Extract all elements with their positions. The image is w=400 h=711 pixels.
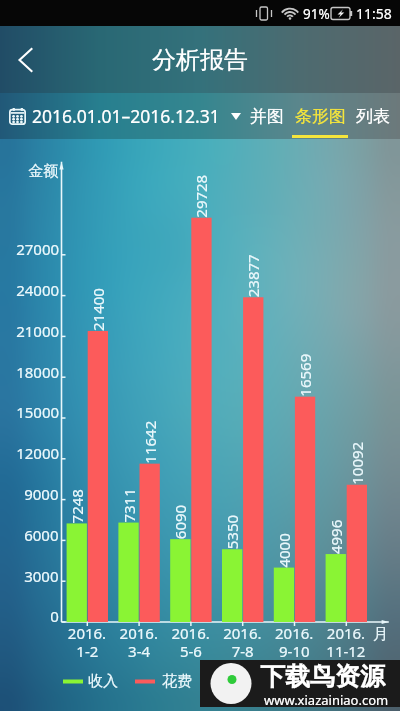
button[interactable]: 列表 bbox=[351, 93, 395, 139]
button[interactable]: 2016.01.01–2016.12.31 bbox=[0, 104, 245, 128]
button[interactable]: 并图 bbox=[245, 93, 289, 139]
staticText: 条形图 bbox=[295, 106, 346, 127]
staticText: 2016.01.01–2016.12.31 bbox=[32, 104, 220, 128]
staticText: 分析报告 bbox=[152, 45, 248, 75]
staticText: 并图 bbox=[250, 106, 284, 127]
button[interactable]: 条形图 bbox=[289, 93, 351, 139]
button[interactable]: Back bbox=[3, 38, 47, 82]
staticText: 列表 bbox=[356, 106, 390, 127]
